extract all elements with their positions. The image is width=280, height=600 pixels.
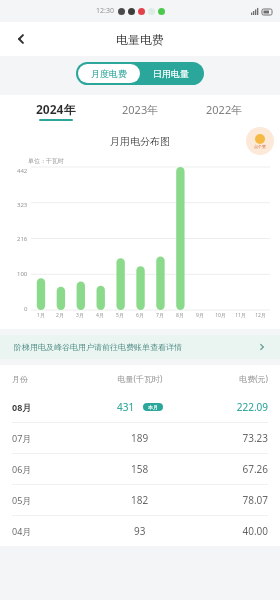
button[interactable]: 07月	[0, 423, 280, 453]
staticText: 323	[17, 201, 28, 209]
staticText: 78.07	[188, 493, 268, 507]
staticText: 0	[24, 305, 28, 313]
button[interactable]: 阶梯用电及峰谷电用户请前往电费账单查看详情	[0, 335, 280, 359]
staticText: 8月	[176, 312, 184, 319]
button[interactable]: 点个赞	[246, 127, 274, 155]
staticText: 12月	[255, 312, 266, 319]
staticText: 216	[17, 235, 28, 243]
staticText: 电量(千瓦时)	[92, 373, 188, 384]
button[interactable]: 2022年	[182, 102, 266, 121]
staticText: 158	[131, 462, 149, 476]
button[interactable]: 05月	[0, 485, 280, 515]
staticText: 08月	[12, 401, 92, 413]
staticText: 93	[134, 524, 146, 538]
staticText: 电费(元)	[188, 373, 268, 384]
staticText: 06月	[12, 463, 92, 475]
staticText: 2月	[56, 312, 64, 319]
staticText: 6月	[136, 312, 144, 319]
staticText: 1月	[37, 312, 45, 319]
staticText: 月度电费	[91, 68, 127, 79]
staticText: 单位：千瓦时	[28, 157, 64, 165]
staticText: 电量电费	[116, 32, 164, 47]
button[interactable]: 08月	[0, 392, 280, 422]
staticText: 点个赞	[254, 144, 266, 149]
staticText: 73.23	[188, 431, 268, 445]
staticText: 05月	[12, 494, 92, 506]
staticText: 222.09	[188, 400, 268, 414]
staticText: 阶梯用电及峰谷电用户请前往电费账单查看详情	[14, 342, 258, 352]
button[interactable]: 月度电费	[78, 64, 140, 83]
staticText: 100	[17, 270, 28, 278]
staticText: 40.00	[188, 524, 268, 538]
staticText: 月份	[12, 374, 92, 384]
staticText: 10月	[215, 312, 226, 319]
staticText: 2022年	[206, 102, 243, 117]
staticText: 12:30	[96, 6, 114, 16]
staticText: 2024年	[36, 101, 76, 117]
button[interactable]: 04月	[0, 516, 280, 546]
staticText: 07月	[12, 432, 92, 444]
staticText: 月用电分布图	[110, 135, 170, 148]
staticText: 5月	[116, 312, 124, 319]
staticText: 3月	[76, 312, 84, 319]
button[interactable]: 2024年	[14, 101, 98, 121]
button[interactable]: 06月	[0, 454, 280, 484]
staticText: 9月	[196, 312, 204, 319]
button[interactable]: Back	[6, 24, 36, 54]
staticText: 2023年	[122, 102, 159, 117]
staticText: 4月	[96, 312, 104, 319]
staticText: 182	[131, 493, 149, 507]
staticText: 189	[131, 431, 149, 445]
staticText: 日用电量	[153, 68, 189, 79]
staticText: 442	[17, 167, 28, 175]
button[interactable]: 日用电量	[140, 64, 202, 83]
button[interactable]: 2023年	[98, 102, 182, 121]
staticText: 04月	[12, 525, 92, 537]
staticText: 431	[117, 400, 135, 414]
staticText: 11月	[235, 312, 246, 319]
staticText: 7月	[156, 312, 164, 319]
staticText: 本月	[148, 404, 158, 410]
staticText: 67.26	[188, 462, 268, 476]
